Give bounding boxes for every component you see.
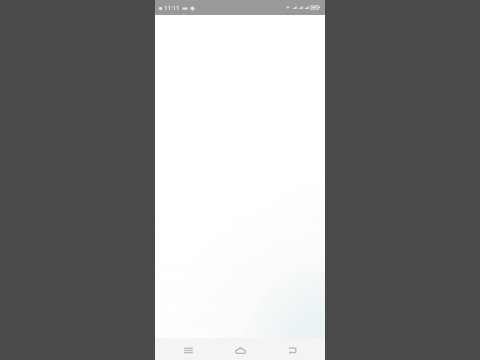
button[interactable]: Home (225, 338, 255, 360)
staticText: 11:11 (164, 4, 180, 12)
button[interactable]: Recent apps (173, 338, 203, 360)
button[interactable]: Back (277, 338, 307, 360)
